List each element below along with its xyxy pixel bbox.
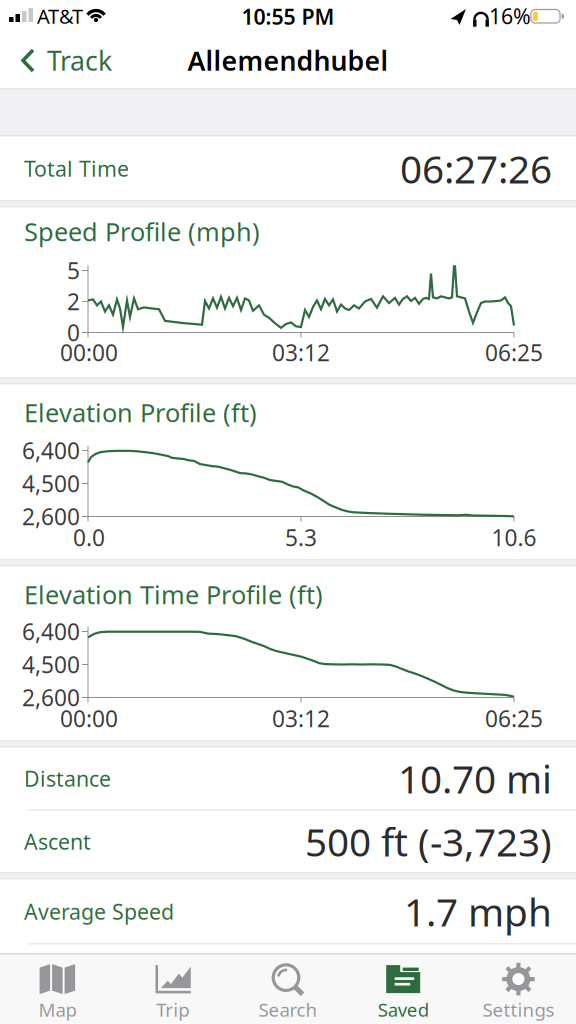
staticText: 16% (489, 2, 531, 30)
staticText: 1.7 mph (404, 886, 552, 937)
staticText: 6,400 (22, 616, 80, 646)
staticText: 06:27:26 (400, 143, 552, 194)
button[interactable]: Map (0, 954, 115, 1023)
staticText: Saved (378, 997, 429, 1022)
staticText: 500 ft (-3,723) (305, 816, 552, 867)
staticText: 10.6 (491, 522, 536, 552)
staticText: Average Speed (24, 897, 174, 926)
staticText: 0 (67, 317, 80, 347)
button[interactable]: Trip (115, 954, 230, 1023)
staticText: Settings (482, 997, 554, 1022)
staticText: 10:55 PM (241, 2, 334, 31)
staticText: 10.70 mi (398, 753, 552, 804)
staticText: Map (39, 997, 77, 1022)
staticText: Total Time (24, 154, 129, 183)
staticText: Speed Profile (mph) (24, 215, 260, 248)
staticText: AT&T (37, 3, 83, 29)
button[interactable]: Track (8, 36, 112, 84)
staticText: 00:00 (60, 337, 118, 367)
staticText: Ascent (24, 827, 91, 856)
staticText: Search (258, 997, 317, 1022)
staticText: 4,500 (22, 468, 80, 498)
staticText: 0.0 (73, 522, 105, 552)
staticText: 03:12 (272, 337, 330, 367)
staticText: 00:00 (60, 703, 118, 733)
staticText: 2,600 (22, 682, 80, 712)
staticText: Distance (24, 764, 111, 793)
staticText: 03:12 (272, 703, 330, 733)
staticText: 5.3 (285, 522, 317, 552)
button[interactable]: Saved (346, 954, 461, 1023)
staticText: 2,600 (22, 501, 80, 531)
staticText: 6,400 (22, 435, 80, 465)
staticText: Trip (156, 997, 189, 1022)
staticText: Track (47, 43, 112, 78)
staticText: 5 (67, 255, 80, 285)
button[interactable]: Search (230, 954, 346, 1023)
staticText: Elevation Profile (ft) (24, 396, 257, 429)
staticText: Allemendhubel (187, 43, 388, 78)
staticText: 2 (67, 286, 80, 316)
button[interactable]: Settings (461, 954, 576, 1023)
staticText: 4,500 (22, 649, 80, 679)
staticText: Elevation Time Profile (ft) (24, 578, 323, 611)
staticText: 06:25 (485, 337, 543, 367)
staticText: 06:25 (485, 703, 543, 733)
